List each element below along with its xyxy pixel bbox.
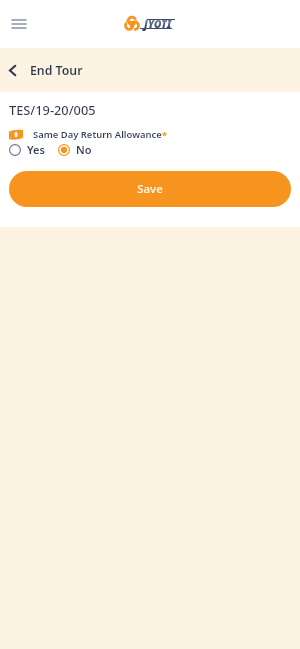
staticText: Same Day Return Allowance xyxy=(33,128,162,141)
button[interactable]: Save xyxy=(9,171,291,207)
staticText: TES/19-20/005 xyxy=(9,101,96,118)
staticText: No xyxy=(76,142,92,157)
staticText: End Tour xyxy=(30,62,83,79)
other: Back xyxy=(9,65,16,76)
staticText: Yes xyxy=(27,142,45,157)
button[interactable]: Back xyxy=(0,48,300,92)
button[interactable]: Yes xyxy=(8,142,45,157)
staticText: JYOTI xyxy=(144,17,172,31)
staticText: Save xyxy=(137,181,163,197)
button[interactable]: No xyxy=(57,142,92,157)
button[interactable]: Open navigation menu xyxy=(2,7,36,41)
staticText: * xyxy=(162,129,167,141)
